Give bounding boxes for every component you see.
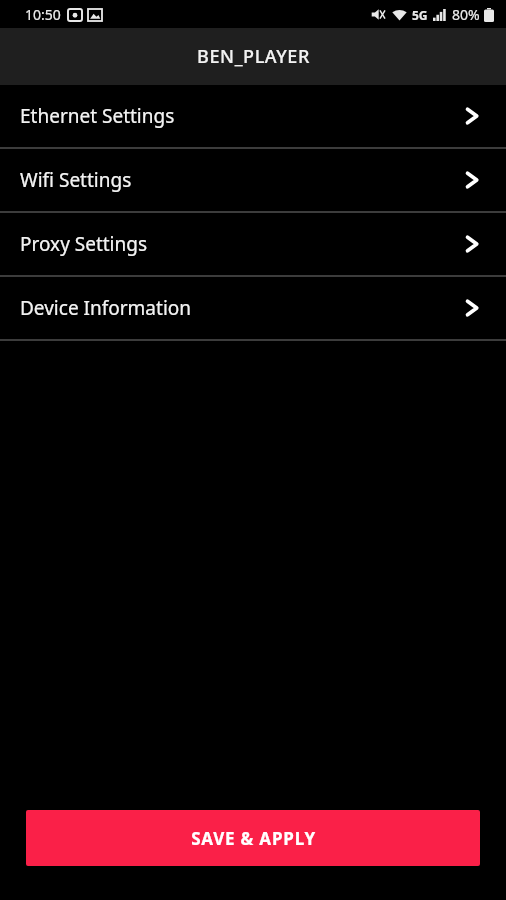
button[interactable]: Ethernet Settings [0,85,506,147]
staticText: 80% [452,5,480,24]
other: Open [464,298,480,318]
other: Open [464,170,480,190]
button[interactable]: Proxy Settings [0,213,506,275]
staticText: 10:50 [25,5,61,24]
staticText: Proxy Settings [20,231,148,257]
staticText: Device Information [20,295,192,321]
staticText: Wifi Settings [20,167,132,193]
button[interactable]: SAVE & APPLY [26,810,480,866]
staticText: Ethernet Settings [20,103,175,129]
button[interactable]: Device Information [0,277,506,339]
staticText: SAVE & APPLY [191,827,316,850]
other: Open [464,106,480,126]
staticText: 5G [412,7,428,23]
other: Open [464,234,480,254]
staticText: BEN_PLAYER [197,44,310,69]
button[interactable]: Wifi Settings [0,149,506,211]
